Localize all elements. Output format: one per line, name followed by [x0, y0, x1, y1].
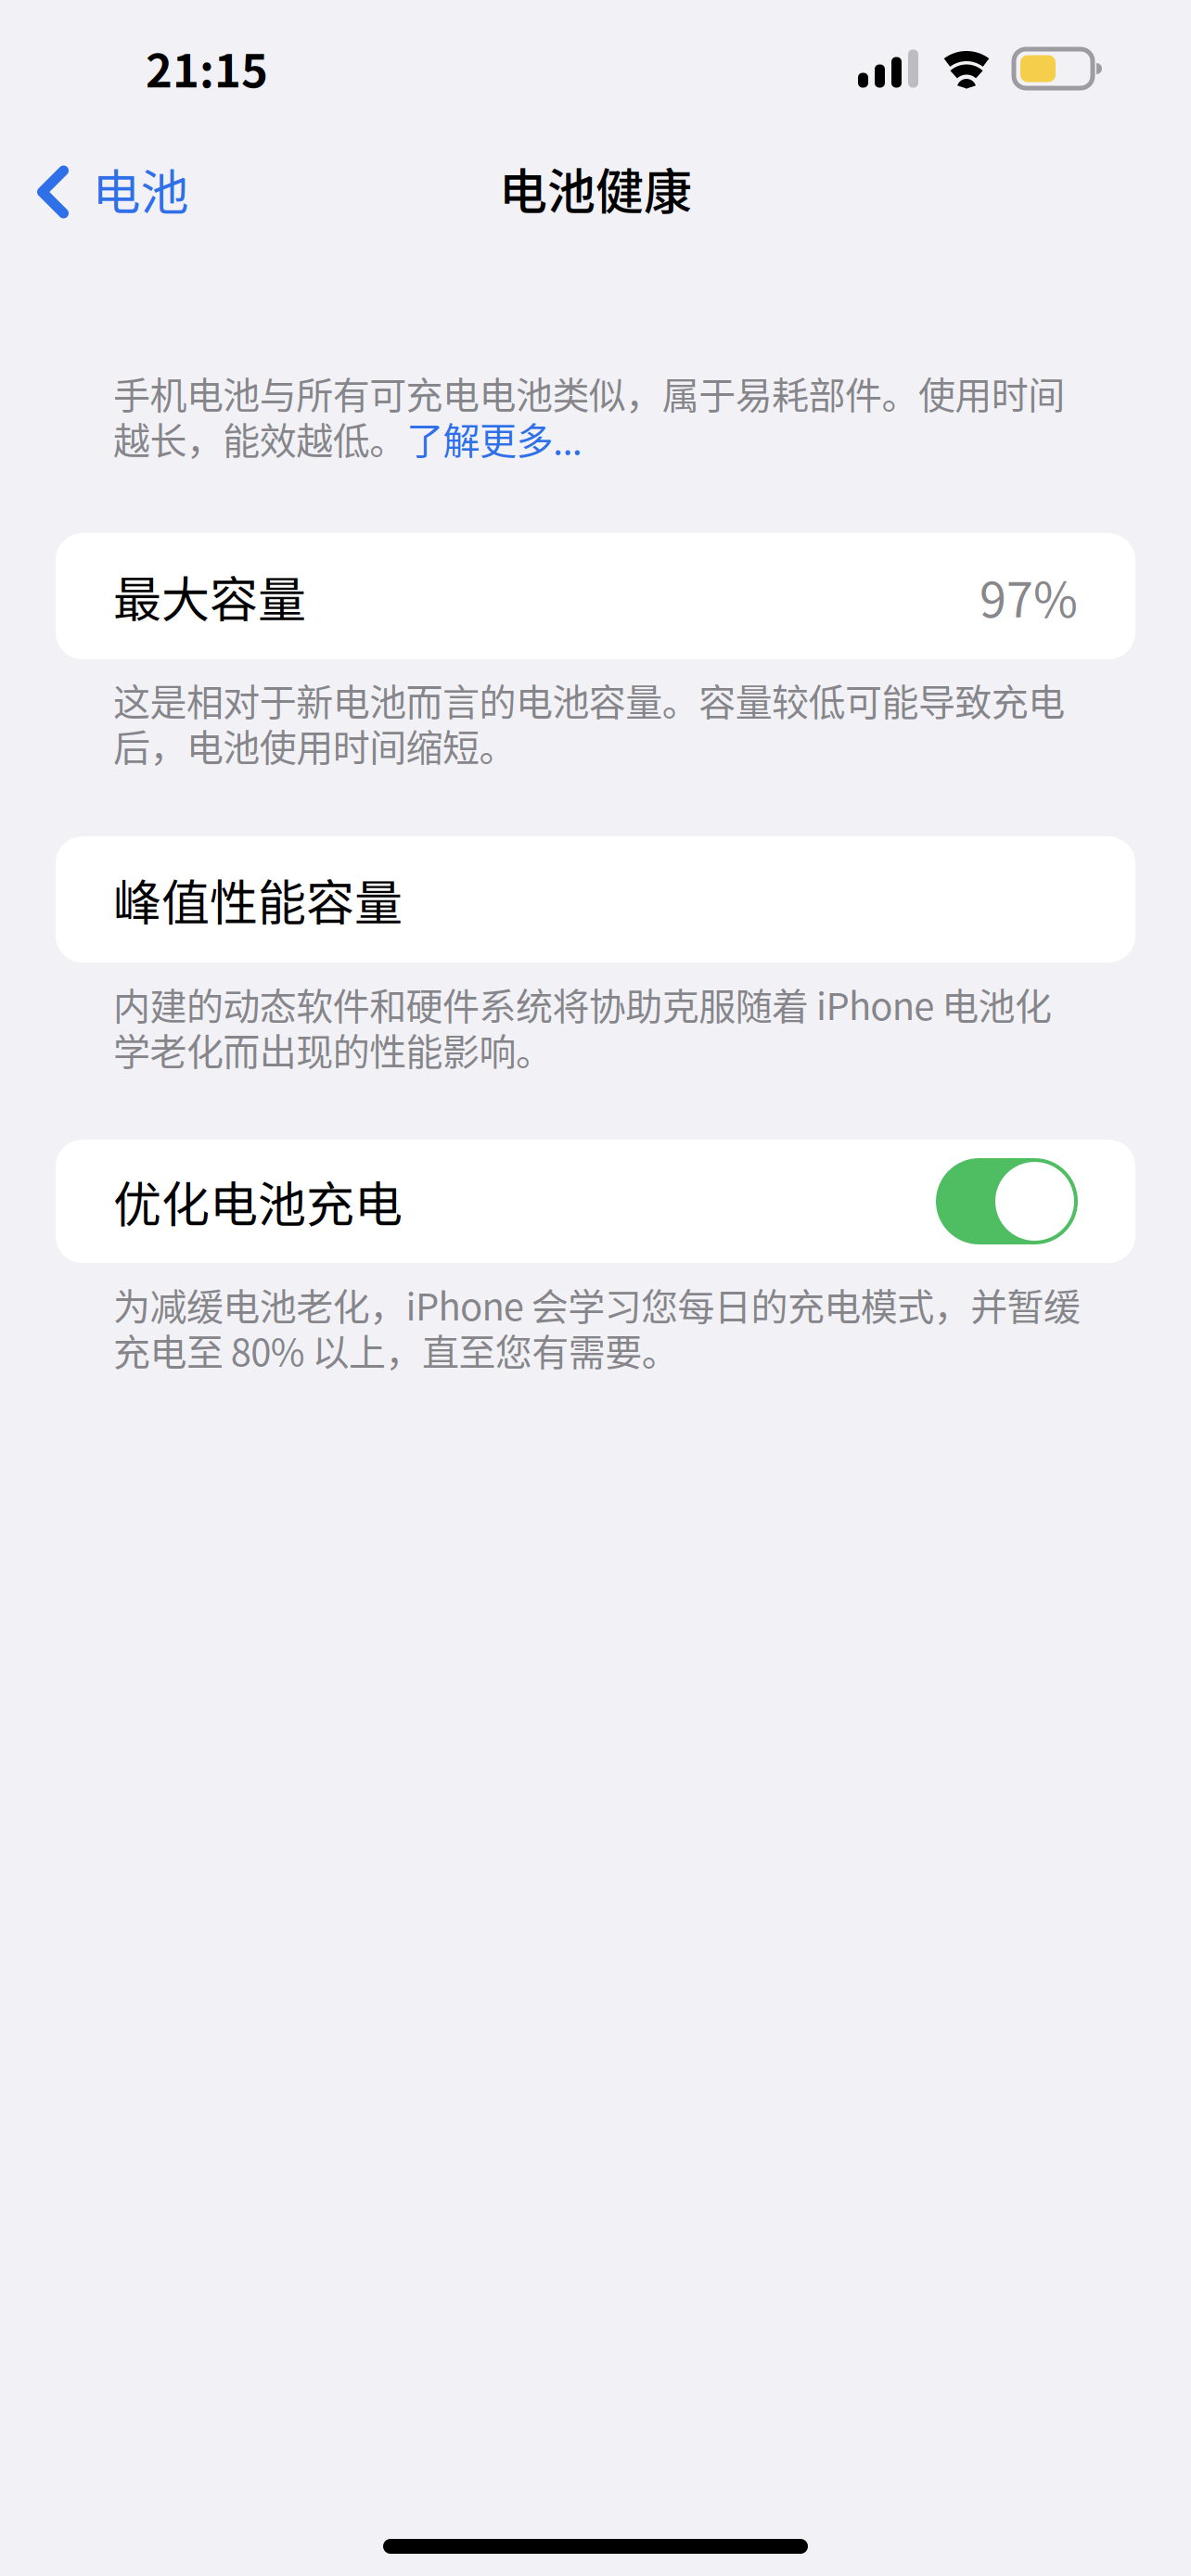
- staticText: 峰值性能容量: [113, 865, 403, 934]
- staticText: 97%: [980, 561, 1078, 631]
- staticText: 这是相对于新电池而言的电池容量。容量较低可能导致充电后，电池使用时间缩短。: [113, 677, 1065, 768]
- staticText: 了解更多...: [406, 415, 582, 461]
- button[interactable]: 了解更多...: [406, 415, 582, 461]
- staticText: 电池健康: [499, 153, 692, 223]
- staticText: 最大容量: [113, 561, 306, 631]
- button[interactable]: 电池: [16, 140, 209, 244]
- staticText: 21:15: [146, 35, 268, 101]
- staticText: 为减缓电池老化，iPhone 会学习您每日的充电模式，并暂缓充电至 80% 以上…: [113, 1282, 1081, 1372]
- staticText: 电池: [92, 154, 189, 224]
- button[interactable]: 峰值性能容量: [0, 0, 1191, 2576]
- staticText: 优化电池充电: [113, 1166, 403, 1236]
- button[interactable]: 优化电池充电: [0, 0, 1191, 2576]
- staticText: 越长，能效越低。: [113, 415, 406, 461]
- staticText: 手机电池与所有可充电电池类似，属于易耗部件。使用时间: [113, 370, 1065, 415]
- staticText: 内建的动态软件和硬件系统将协助克服随着 iPhone 电池化学老化而出现的性能影…: [113, 981, 1052, 1072]
